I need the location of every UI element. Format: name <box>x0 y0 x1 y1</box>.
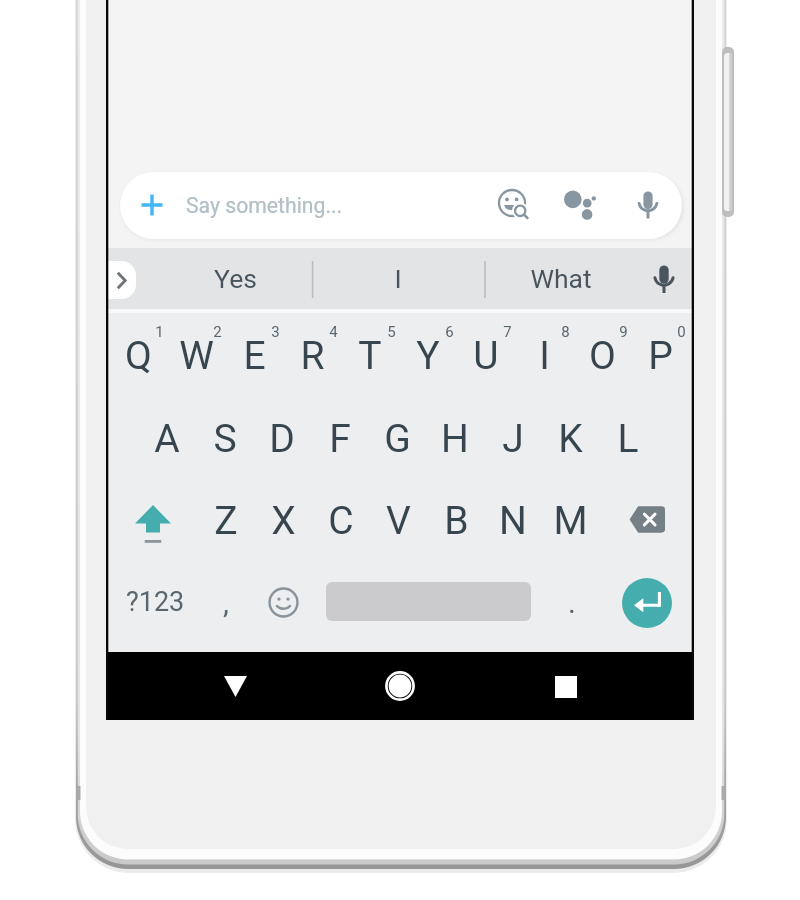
staticText: C <box>328 498 354 544</box>
button[interactable]: Voice typing <box>643 258 685 300</box>
button[interactable]: Add <box>134 187 170 223</box>
button[interactable]: W <box>167 320 225 392</box>
button[interactable]: R <box>283 320 341 392</box>
button[interactable]: Enter <box>622 578 672 628</box>
button[interactable]: D <box>253 403 311 475</box>
button[interactable]: E <box>225 320 283 392</box>
button[interactable]: K <box>541 403 599 475</box>
staticText: B <box>444 498 469 544</box>
staticText: G <box>384 416 411 462</box>
button[interactable]: Emoji search <box>492 183 538 229</box>
staticText: 5 <box>387 323 396 341</box>
button[interactable]: V <box>369 485 427 557</box>
staticText: V <box>386 498 411 544</box>
staticText: U <box>473 333 499 379</box>
button[interactable]: P <box>631 320 689 392</box>
button[interactable]: C <box>312 485 370 557</box>
button[interactable]: Shift <box>124 493 182 557</box>
staticText: Say something... <box>186 193 343 218</box>
staticText: Q <box>125 333 152 379</box>
staticText: What <box>530 263 592 294</box>
button[interactable]: T <box>341 320 399 392</box>
staticText: 0 <box>677 323 686 341</box>
staticText: D <box>269 416 295 462</box>
button[interactable]: M <box>541 485 599 557</box>
staticText: E <box>243 333 266 379</box>
button[interactable]: U <box>457 320 515 392</box>
staticText: I <box>394 263 402 294</box>
staticText: 1 <box>155 323 164 341</box>
button[interactable]: Z <box>197 485 255 557</box>
staticText: 2 <box>213 323 222 341</box>
button[interactable]: Assistant <box>563 188 609 234</box>
button[interactable]: F <box>311 403 369 475</box>
staticText: Y <box>416 333 440 379</box>
staticText: Z <box>214 498 238 544</box>
button[interactable]: J <box>484 403 542 475</box>
staticText: N <box>499 498 527 544</box>
staticText: I <box>539 333 550 379</box>
staticText: Yes <box>214 263 257 294</box>
staticText: H <box>441 416 469 462</box>
button[interactable]: Yes <box>180 252 290 304</box>
button[interactable]: Home <box>377 663 422 708</box>
staticText: 3 <box>271 323 280 341</box>
staticText: 6 <box>445 323 454 341</box>
staticText: O <box>589 333 616 379</box>
button[interactable]: Backspace <box>613 483 681 555</box>
staticText: R <box>300 333 325 379</box>
button[interactable]: A <box>138 403 196 475</box>
button[interactable]: I <box>343 252 453 304</box>
button[interactable]: , <box>197 566 255 638</box>
button[interactable]: What <box>506 252 616 304</box>
staticText: , <box>223 585 229 620</box>
button[interactable]: Voice input <box>625 182 671 228</box>
button[interactable]: Recent apps <box>543 664 588 709</box>
button[interactable]: Add <box>120 172 682 239</box>
staticText: 7 <box>503 323 512 341</box>
button[interactable]: L <box>599 403 657 475</box>
staticText: K <box>558 416 583 462</box>
staticText: 9 <box>619 323 628 341</box>
staticText: W <box>179 333 214 379</box>
button[interactable]: ?123 <box>107 566 203 638</box>
staticText: 8 <box>561 323 570 341</box>
button[interactable]: Q <box>109 320 167 392</box>
button[interactable]: I <box>515 320 573 392</box>
staticText: M <box>553 498 588 544</box>
staticText: . <box>568 585 576 620</box>
staticText: 4 <box>329 323 338 341</box>
button[interactable]: G <box>368 403 426 475</box>
button[interactable]: Back <box>213 664 257 708</box>
button[interactable]: X <box>254 485 312 557</box>
staticText: F <box>329 416 351 462</box>
button[interactable]: Emoji keyboard <box>253 566 313 638</box>
button[interactable]: B <box>427 485 485 557</box>
staticText: X <box>271 498 296 544</box>
button[interactable]: S <box>196 403 254 475</box>
staticText: ?123 <box>126 586 185 618</box>
staticText: T <box>358 333 382 379</box>
staticText: J <box>502 416 524 462</box>
staticText: P <box>648 333 673 379</box>
button[interactable]: More suggestions <box>107 261 136 299</box>
button[interactable]: . <box>543 566 601 638</box>
button[interactable]: Y <box>399 320 457 392</box>
staticText: A <box>154 416 180 462</box>
button[interactable]: O <box>573 320 631 392</box>
button[interactable]: N <box>484 485 542 557</box>
staticText: S <box>213 416 237 462</box>
button[interactable]: H <box>426 403 484 475</box>
staticText: L <box>617 416 639 462</box>
